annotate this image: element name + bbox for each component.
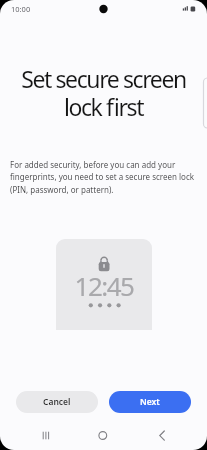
staticText: 10:00 [11, 4, 31, 14]
button[interactable] [152, 427, 172, 444]
button[interactable]: Next [109, 391, 191, 413]
button[interactable]: Cancel [16, 391, 98, 413]
staticText: 12:45 [56, 268, 152, 303]
staticText: For added security, before you can add y… [10, 159, 195, 196]
staticText: Next [140, 396, 160, 408]
button[interactable] [93, 427, 113, 444]
staticText: Cancel [43, 396, 71, 408]
staticText: Set secure screen lock first [0, 63, 207, 123]
button[interactable] [36, 427, 56, 444]
